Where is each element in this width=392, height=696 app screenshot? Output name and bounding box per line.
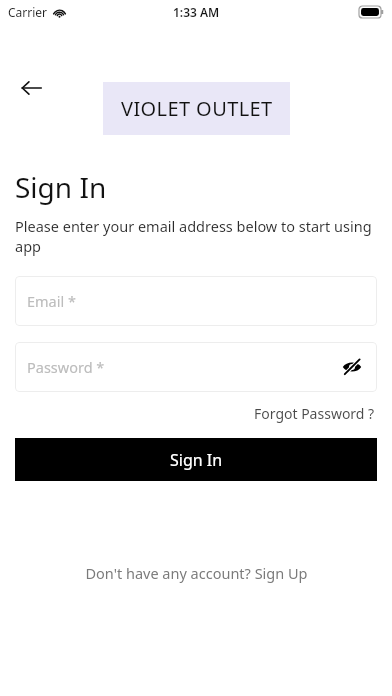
staticText: Sign In (15, 168, 107, 206)
staticText: Forgot Password ? (254, 404, 375, 423)
staticText: Don't have any account? Sign Up (85, 563, 308, 583)
button[interactable]: Sign In (15, 438, 377, 481)
staticText: Password * (27, 357, 105, 377)
button[interactable]: Back (14, 70, 50, 106)
staticText: Sign In (170, 449, 223, 471)
button[interactable]: Password * (15, 342, 377, 392)
button[interactable]: VIOLET OUTLET (103, 82, 290, 135)
staticText: Email * (27, 291, 76, 311)
staticText: VIOLET OUTLET (121, 95, 273, 122)
button[interactable]: Email * (15, 276, 377, 326)
button[interactable]: Show password (337, 352, 367, 382)
staticText: Carrier (8, 4, 48, 20)
staticText: Please enter your email address below to… (15, 216, 377, 256)
button[interactable]: Forgot Password ? (252, 402, 377, 425)
button[interactable]: Don't have any account? Sign Up (79, 559, 314, 587)
staticText: 1:33 AM (173, 4, 220, 20)
